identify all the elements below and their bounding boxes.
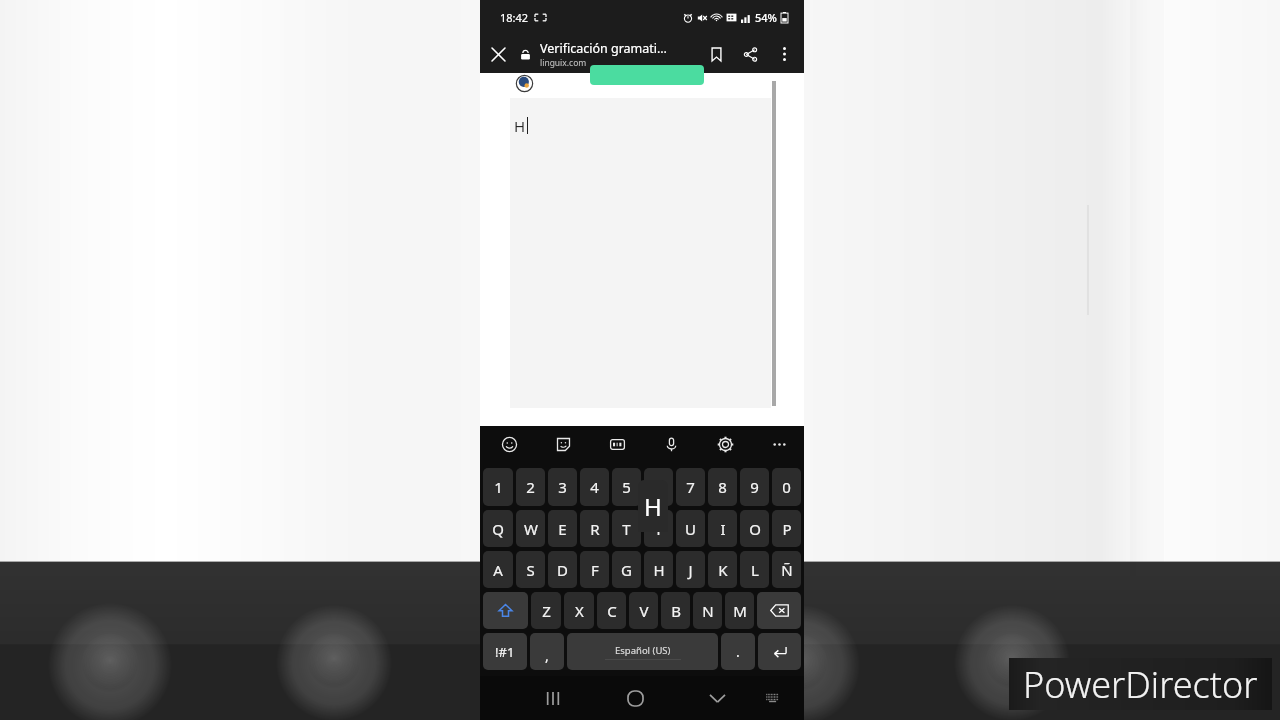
button[interactable]: 6 — [644, 468, 673, 506]
button[interactable]: !#1 — [483, 633, 527, 670]
staticText: F — [591, 560, 599, 580]
staticText: G — [621, 560, 632, 580]
staticText: H — [514, 116, 526, 136]
button[interactable]: More — [764, 429, 794, 459]
staticText: !#1 — [495, 643, 515, 661]
button[interactable]: R — [580, 510, 609, 547]
staticText: P — [782, 519, 792, 539]
button[interactable]: , — [530, 633, 564, 670]
button[interactable]: GIF — [602, 429, 632, 459]
button[interactable]: Bookmark — [699, 37, 733, 71]
button[interactable]: H — [510, 98, 771, 408]
button[interactable]: Enter — [758, 633, 801, 670]
staticText: Y — [654, 519, 663, 539]
button[interactable]: U — [676, 510, 705, 547]
button[interactable]: G — [612, 551, 641, 588]
button[interactable]: Recents — [533, 678, 573, 718]
button[interactable]: F — [580, 551, 609, 588]
button[interactable]: Hide keyboard — [697, 678, 737, 718]
staticText: A — [493, 560, 503, 580]
button[interactable]: S — [516, 551, 545, 588]
button[interactable]: 2 — [516, 468, 545, 506]
button[interactable]: L — [740, 551, 769, 588]
button[interactable]: Share — [733, 37, 767, 71]
button[interactable]: T — [612, 510, 641, 547]
button[interactable]: Y — [644, 510, 673, 547]
staticText: O — [749, 519, 761, 539]
staticText: linguix.com — [540, 57, 587, 69]
button[interactable]: I — [708, 510, 737, 547]
staticText: , — [545, 646, 549, 665]
staticText: 54% — [755, 10, 777, 25]
button[interactable]: N — [693, 592, 722, 629]
staticText: L — [751, 560, 759, 580]
staticText: 18:42 — [500, 10, 529, 25]
button[interactable]: A — [483, 551, 513, 588]
button[interactable] — [590, 65, 704, 85]
staticText: B — [671, 601, 681, 621]
button[interactable]: Home — [615, 678, 655, 718]
button[interactable]: 3 — [548, 468, 577, 506]
staticText: Q — [492, 519, 504, 539]
button[interactable]: B — [661, 592, 690, 629]
button[interactable]: Q — [483, 510, 513, 547]
button[interactable]: X — [564, 592, 594, 629]
staticText: X — [575, 601, 584, 621]
button[interactable]: W — [516, 510, 545, 547]
button[interactable]: D — [548, 551, 577, 588]
staticText: S — [526, 560, 535, 580]
button[interactable]: V — [629, 592, 658, 629]
button[interactable]: Voice input — [656, 429, 686, 459]
staticText: Z — [542, 601, 551, 621]
staticText: W — [524, 519, 538, 539]
staticText: H — [644, 490, 662, 523]
staticText: E — [558, 519, 567, 539]
staticText: Verificación gramati… — [540, 40, 667, 57]
button[interactable]: 4 — [580, 468, 609, 506]
button[interactable]: Shift — [483, 592, 528, 629]
button[interactable]: Close — [480, 36, 516, 72]
staticText: U — [685, 519, 696, 539]
button[interactable]: O — [740, 510, 769, 547]
button[interactable]: 7 — [676, 468, 705, 506]
button[interactable]: Backspace — [757, 592, 801, 629]
button[interactable]: Español (US) — [567, 633, 718, 670]
button[interactable]: 8 — [708, 468, 737, 506]
staticText: R — [590, 519, 600, 539]
button[interactable]: 0 — [772, 468, 801, 506]
button[interactable]: Z — [531, 592, 561, 629]
staticText: PowerDirector — [1023, 660, 1258, 709]
button[interactable]: . — [721, 633, 755, 670]
button[interactable]: More options — [767, 37, 801, 71]
staticText: C — [607, 601, 617, 621]
staticText: Ñ — [781, 560, 793, 580]
button[interactable]: K — [708, 551, 737, 588]
button[interactable]: Ñ — [772, 551, 801, 588]
button[interactable]: M — [725, 592, 754, 629]
staticText: 5 — [622, 477, 631, 497]
staticText: M — [733, 601, 747, 621]
button[interactable]: Settings — [710, 429, 740, 459]
button[interactable]: Emoji — [494, 429, 524, 459]
button[interactable]: 1 — [483, 468, 513, 506]
staticText: 4 — [590, 477, 599, 497]
staticText: T — [622, 519, 631, 539]
staticText: J — [688, 560, 693, 580]
staticText: 1 — [494, 477, 503, 497]
button[interactable]: C — [597, 592, 626, 629]
button[interactable]: Switch keyboard — [755, 680, 791, 716]
button[interactable]: P — [772, 510, 801, 547]
staticText: 9 — [750, 477, 759, 497]
button[interactable]: H — [644, 551, 673, 588]
staticText: 2 — [526, 477, 535, 497]
button[interactable]: J — [676, 551, 705, 588]
staticText: D — [557, 560, 568, 580]
button[interactable]: E — [548, 510, 577, 547]
staticText: N — [702, 601, 714, 621]
button[interactable]: Stickers — [548, 429, 578, 459]
staticText: 0 — [782, 477, 791, 497]
button[interactable]: 5 — [612, 468, 641, 506]
staticText: H — [653, 560, 665, 580]
button[interactable]: 9 — [740, 468, 769, 506]
